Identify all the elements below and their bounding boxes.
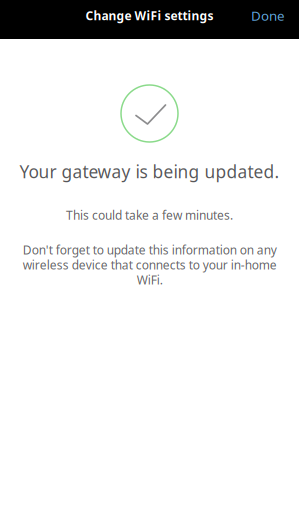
- staticText: This could take a few minutes.: [66, 207, 233, 223]
- staticText: Don't forget to update this information …: [22, 242, 276, 288]
- button[interactable]: Done: [237, 2, 299, 37]
- staticText: Change WiFi settings: [85, 8, 213, 23]
- staticText: Done: [251, 7, 285, 24]
- staticText: Your gateway is being updated.: [19, 160, 279, 183]
